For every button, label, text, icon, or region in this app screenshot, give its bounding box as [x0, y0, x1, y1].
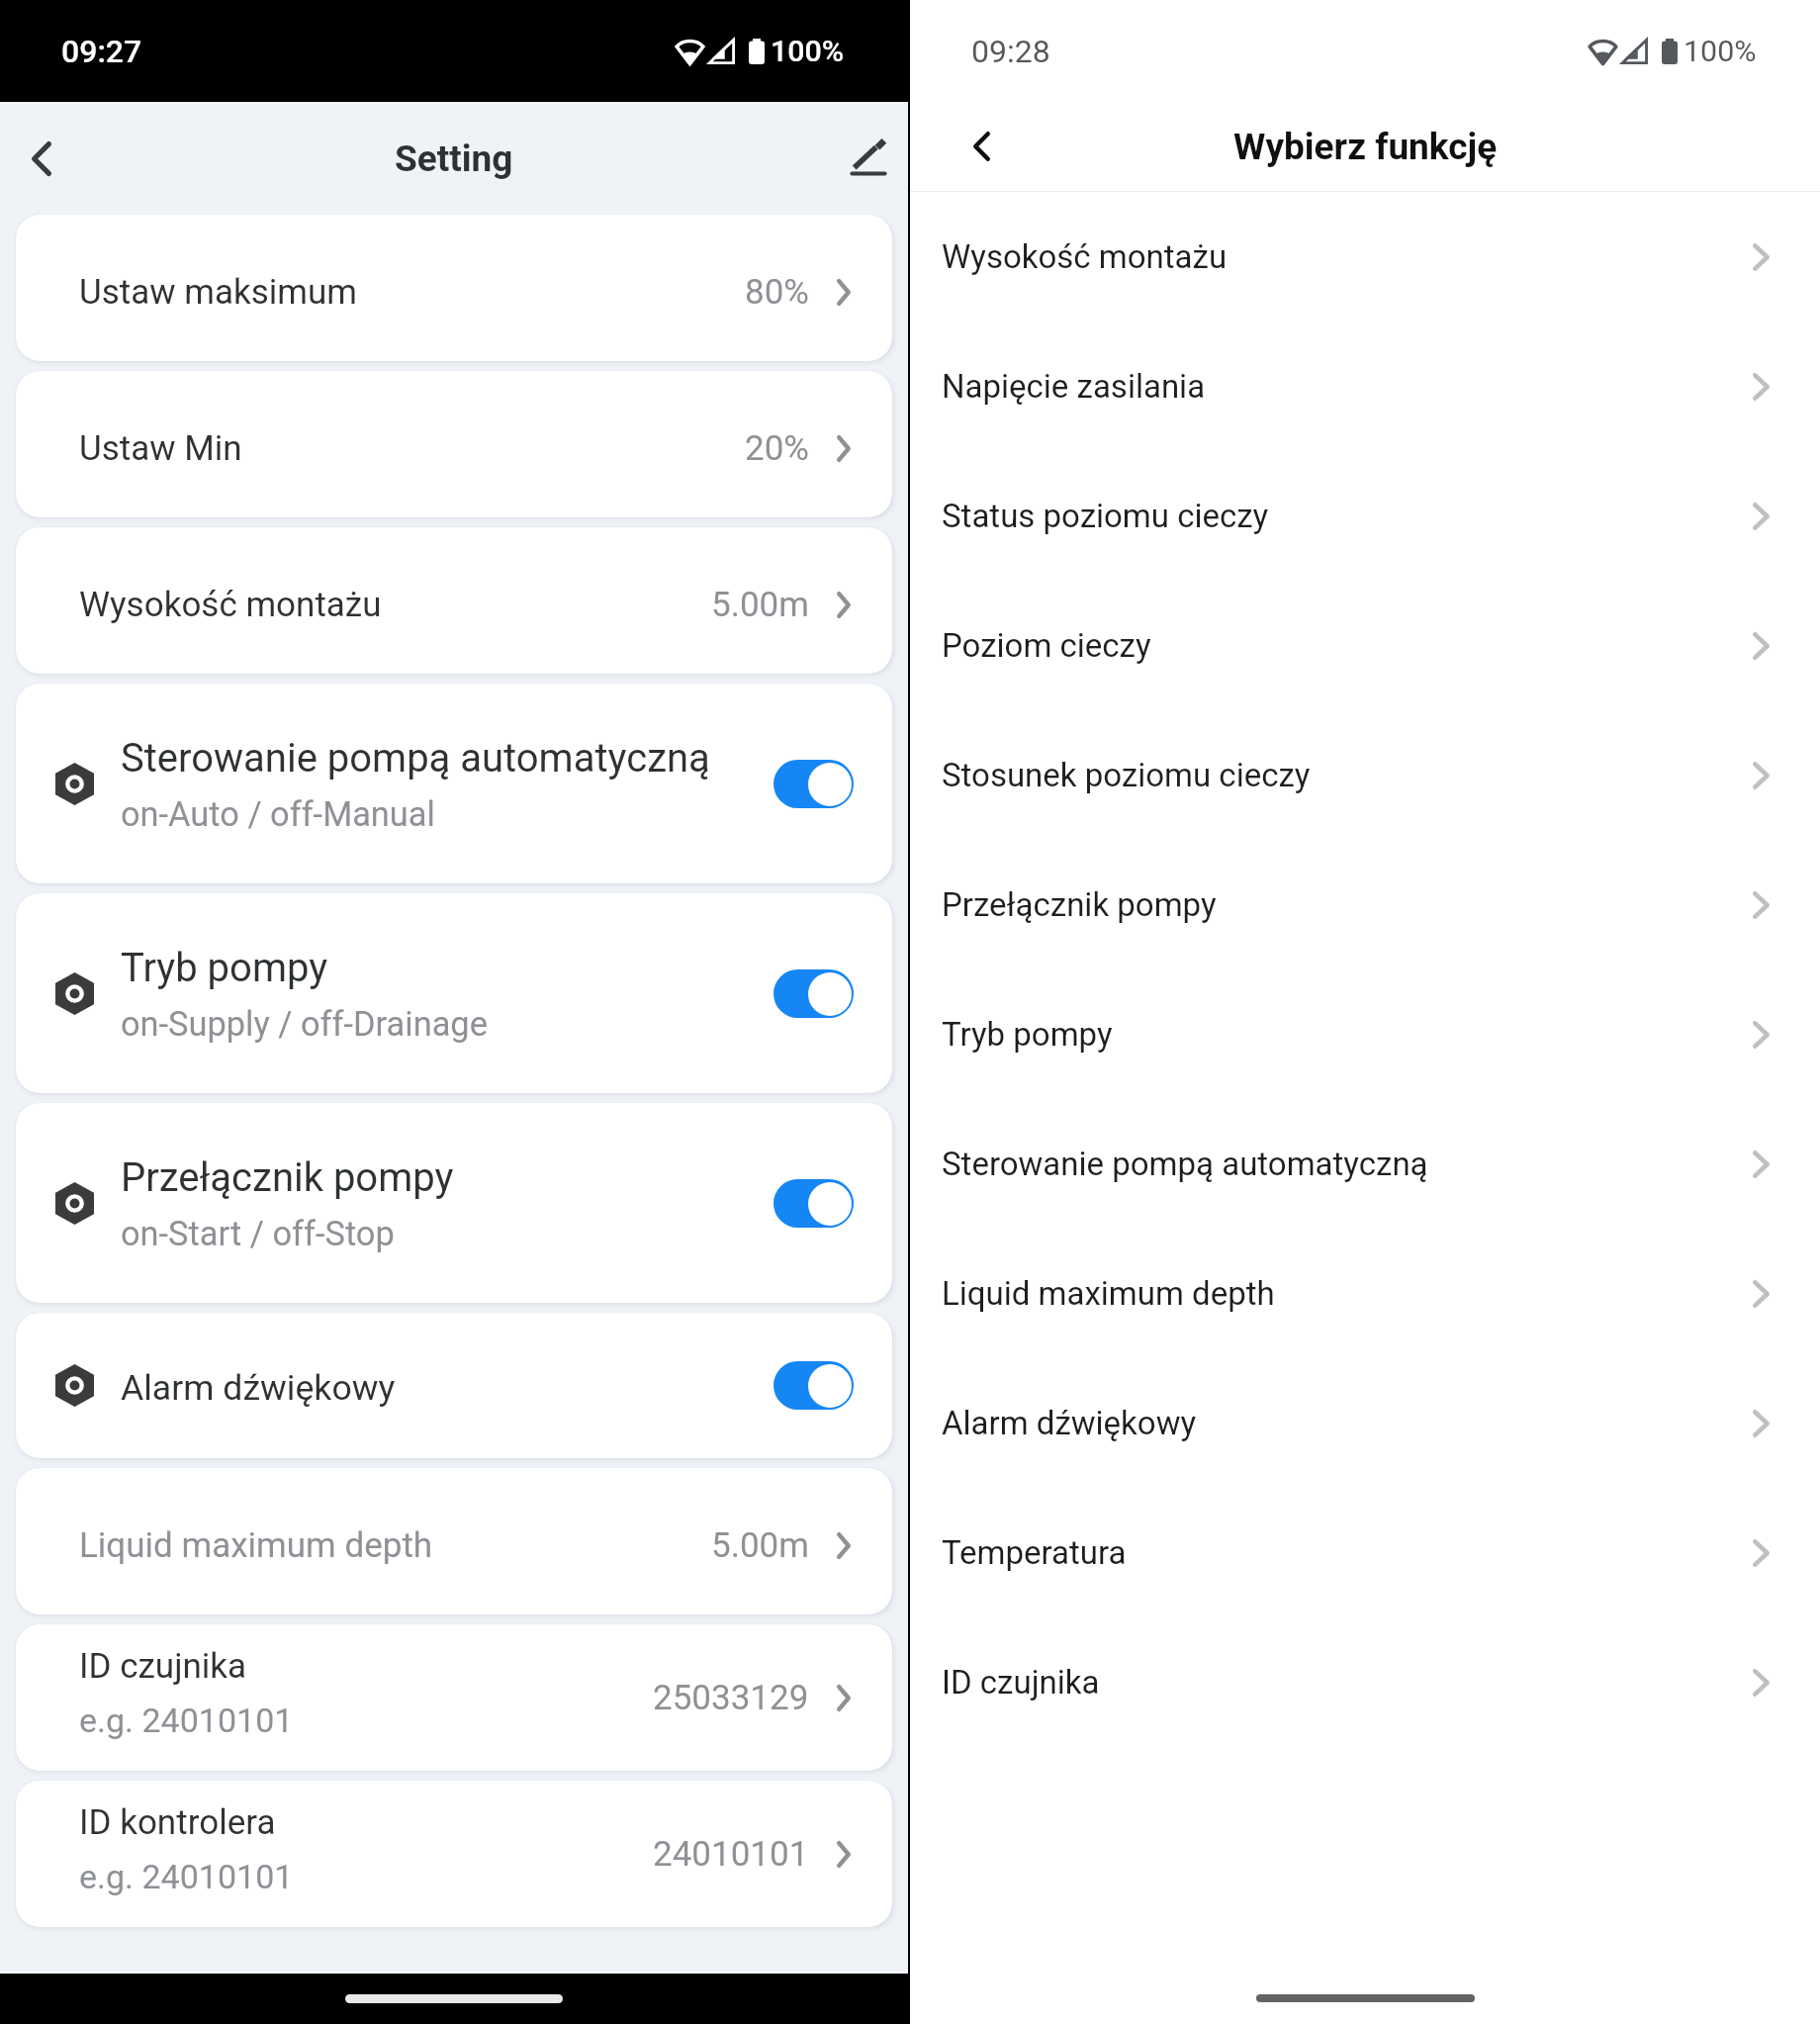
button[interactable]: Back [2, 119, 81, 198]
staticText: Przełącznik pompy [121, 1154, 454, 1201]
staticText: on-Start / off-Stop [121, 1214, 395, 1253]
button[interactable]: Stosunek poziomu cieczy [910, 710, 1820, 840]
staticText: Wysokość montażu [79, 585, 382, 625]
staticText: 5.00m [711, 585, 809, 625]
staticText: Przełącznik pompy [942, 885, 1217, 924]
staticText: 5.00m [711, 1525, 809, 1566]
staticText: e.g. 24010101 [79, 1857, 294, 1896]
staticText: Napięcie zasilania [942, 367, 1206, 406]
button[interactable]: ID kontrolera [16, 1781, 892, 1927]
button[interactable]: Wysokość montażu [910, 192, 1820, 322]
staticText: Wysokość montażu [942, 237, 1228, 276]
staticText: ID czujnika [942, 1663, 1100, 1702]
staticText: 20% [745, 428, 809, 469]
staticText: 25033129 [653, 1678, 809, 1718]
button[interactable]: Tryb pompy [16, 893, 892, 1093]
button[interactable]: Sterowanie pompą automatyczną [910, 1099, 1820, 1229]
button[interactable]: ID czujnika [16, 1624, 892, 1771]
button[interactable]: Napięcie zasilania [910, 322, 1820, 451]
staticText: Alarm dźwiękowy [121, 1367, 773, 1409]
staticText: Stosunek poziomu cieczy [942, 756, 1311, 794]
staticText: Liquid maximum depth [79, 1525, 433, 1566]
staticText: Liquid maximum depth [942, 1274, 1275, 1313]
staticText: ID czujnika [79, 1646, 247, 1687]
button[interactable]: Wysokość montażu [16, 527, 892, 674]
staticText: Poziom cieczy [942, 626, 1151, 665]
button[interactable]: Edit [847, 137, 890, 180]
button[interactable]: Przełącznik pompy [16, 1103, 892, 1303]
button[interactable]: Alarm dźwiękowy [16, 1313, 892, 1458]
button[interactable]: Toggle [773, 969, 854, 1018]
staticText: Temperatura [942, 1533, 1127, 1572]
staticText: Sterowanie pompą automatyczną [121, 735, 710, 782]
staticText: on-Auto / off-Manual [121, 794, 435, 834]
button[interactable]: Status poziomu cieczy [910, 451, 1820, 581]
staticText: Status poziomu cieczy [942, 497, 1269, 535]
button[interactable]: Toggle [773, 1179, 854, 1228]
staticText: Ustaw maksimum [79, 272, 357, 313]
button[interactable]: Przełącznik pompy [910, 840, 1820, 969]
button[interactable]: Ustaw Min [16, 371, 892, 517]
button[interactable]: Ustaw maksimum [16, 215, 892, 361]
button[interactable]: Toggle [773, 1361, 854, 1410]
staticText: 100% [771, 34, 845, 69]
staticText: 80% [745, 272, 809, 313]
staticText: Sterowanie pompą automatyczną [942, 1145, 1428, 1183]
button[interactable]: Sterowanie pompą automatyczną [16, 684, 892, 883]
button[interactable]: Liquid maximum depth [16, 1468, 892, 1614]
staticText: Ustaw Min [79, 428, 242, 469]
staticText: 09:27 [61, 33, 142, 70]
staticText: ID kontrolera [79, 1802, 276, 1843]
button[interactable]: Temperatura [910, 1488, 1820, 1617]
staticText: Alarm dźwiękowy [942, 1404, 1197, 1442]
button[interactable]: Alarm dźwiękowy [910, 1358, 1820, 1488]
staticText: 100% [1683, 34, 1757, 69]
staticText: e.g. 24010101 [79, 1701, 294, 1740]
button[interactable]: Toggle [773, 760, 854, 808]
button[interactable]: Back [938, 103, 1025, 190]
button[interactable]: ID czujnika [910, 1617, 1820, 1747]
button[interactable]: Liquid maximum depth [910, 1229, 1820, 1358]
staticText: on-Supply / off-Drainage [121, 1004, 488, 1044]
staticText: 24010101 [653, 1834, 809, 1875]
staticText: Wybierz funkcję [1233, 126, 1498, 168]
staticText: 09:28 [971, 33, 1050, 70]
button[interactable]: Poziom cieczy [910, 581, 1820, 710]
staticText: Setting [395, 138, 513, 180]
button[interactable]: Tryb pompy [910, 969, 1820, 1099]
staticText: Tryb pompy [121, 945, 328, 991]
staticText: Tryb pompy [942, 1015, 1113, 1054]
